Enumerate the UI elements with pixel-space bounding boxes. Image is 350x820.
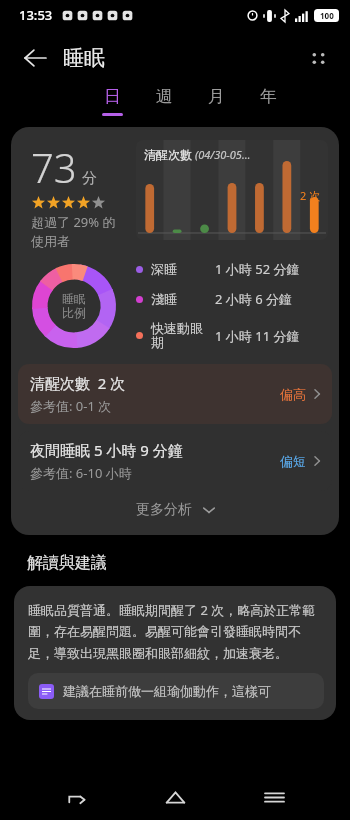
staticText: 睡眠品質普通。睡眠期間醒了 2 次，略高於正常範圍，存在易醒問題。易醒可能會引發… (28, 601, 324, 662)
button[interactable]: 日 (92, 86, 132, 116)
staticText: 偏短 (280, 453, 306, 469)
button[interactable]: 週 (144, 86, 184, 116)
button[interactable]: 更多選項 (297, 37, 339, 79)
button[interactable]: 建議在睡前做一組瑜伽動作，這樣可 (28, 673, 324, 709)
staticText: 日 (104, 86, 121, 107)
button[interactable]: 更多分析 (11, 494, 339, 526)
button[interactable]: 月 (196, 86, 236, 116)
staticText: 夜間睡眠 5 小時 9 分鐘 (30, 440, 183, 460)
staticText: 偏高 (280, 386, 306, 402)
staticText: 2 次 (300, 188, 321, 203)
staticText: (04/30-05… (195, 147, 251, 162)
staticText: 更多分析 (136, 501, 192, 519)
staticText: 13:53 (19, 6, 53, 24)
button[interactable]: 主畫面 (152, 774, 198, 820)
staticText: 1 小時 11 分鐘 (215, 327, 300, 345)
staticText: 解讀與建議 (27, 553, 107, 573)
staticText: 年 (260, 86, 277, 107)
button[interactable]: 返回 (15, 38, 55, 78)
staticText: 73 (31, 140, 77, 194)
staticText: 月 (208, 86, 225, 107)
staticText: 建議在睡前做一組瑜伽動作，這樣可 (63, 683, 271, 699)
button[interactable]: 清醒次數 2 次 (18, 364, 332, 424)
staticText: 清醒次數 2 次 (30, 373, 126, 393)
staticText: 淺睡 (151, 291, 177, 307)
staticText: 清醒次數 (144, 147, 192, 162)
staticText: 週 (156, 86, 173, 107)
staticText: 睡眠 (63, 45, 105, 71)
staticText: 參考值: 6-10 小時 (30, 464, 132, 482)
staticText: 超過了 29% 的 使用者 (31, 213, 116, 250)
staticText: 睡眠 比例 (62, 291, 86, 321)
button[interactable]: 年 (248, 86, 288, 116)
button[interactable]: 夜間睡眠 5 小時 9 分鐘 (18, 431, 332, 491)
staticText: 深睡 (151, 261, 177, 277)
staticText: 2 小時 6 分鐘 (215, 290, 293, 308)
staticText: 分 (82, 169, 97, 188)
button[interactable]: 返回 (53, 774, 99, 820)
staticText: 100 (320, 10, 334, 21)
button[interactable]: 最近使用 (251, 774, 297, 820)
staticText: 參考值: 0-1 次 (30, 397, 112, 415)
staticText: 1 小時 52 分鐘 (215, 260, 300, 278)
staticText: 快速動眼 期 (151, 320, 203, 351)
